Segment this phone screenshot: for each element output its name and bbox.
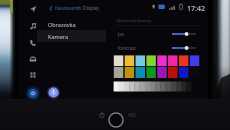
staticText: • bbox=[78, 5, 80, 12]
button[interactable]: Phone bbox=[25, 35, 41, 51]
button[interactable]: Power bbox=[98, 111, 106, 119]
staticText: 17:42 bbox=[187, 4, 205, 14]
button[interactable]: Voice assistant bbox=[47, 86, 60, 99]
button[interactable]: Navigation bbox=[25, 1, 41, 17]
staticText: Kamera bbox=[48, 33, 68, 40]
staticText: VOL bbox=[128, 112, 137, 118]
button[interactable]: Kontrast bbox=[114, 43, 200, 53]
staticText: Jas bbox=[118, 31, 124, 37]
button[interactable]: Settings bbox=[25, 86, 41, 102]
button[interactable]: Jas bbox=[114, 29, 200, 39]
button[interactable]: Apps bbox=[25, 67, 41, 83]
button[interactable]: Status bar bbox=[150, 1, 206, 13]
staticText: Obrazovka kamery bbox=[116, 18, 152, 23]
button[interactable]: Volume knob bbox=[106, 110, 126, 130]
staticText: Displej bbox=[83, 5, 99, 12]
staticText: Nastavenia bbox=[55, 5, 82, 12]
button[interactable]: Kamera bbox=[37, 30, 106, 42]
staticText: Kontrast bbox=[118, 45, 136, 51]
button[interactable]: Obrazovka bbox=[37, 18, 106, 30]
button[interactable]: Vehicle bbox=[25, 51, 41, 67]
button[interactable]: Nastavenia bbox=[48, 4, 118, 13]
staticText: Obrazovka bbox=[48, 21, 76, 28]
button[interactable]: Media bbox=[25, 18, 41, 34]
